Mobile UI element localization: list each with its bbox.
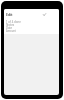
button[interactable]: Edit bbox=[6, 12, 13, 17]
button[interactable]: Save bbox=[41, 11, 47, 17]
staticText: Amount bbox=[6, 29, 16, 33]
staticText: Date bbox=[6, 26, 13, 30]
staticText: Notes bbox=[6, 23, 15, 27]
staticText: Edit bbox=[6, 12, 13, 17]
staticText: 1 of 4 done bbox=[6, 20, 21, 24]
